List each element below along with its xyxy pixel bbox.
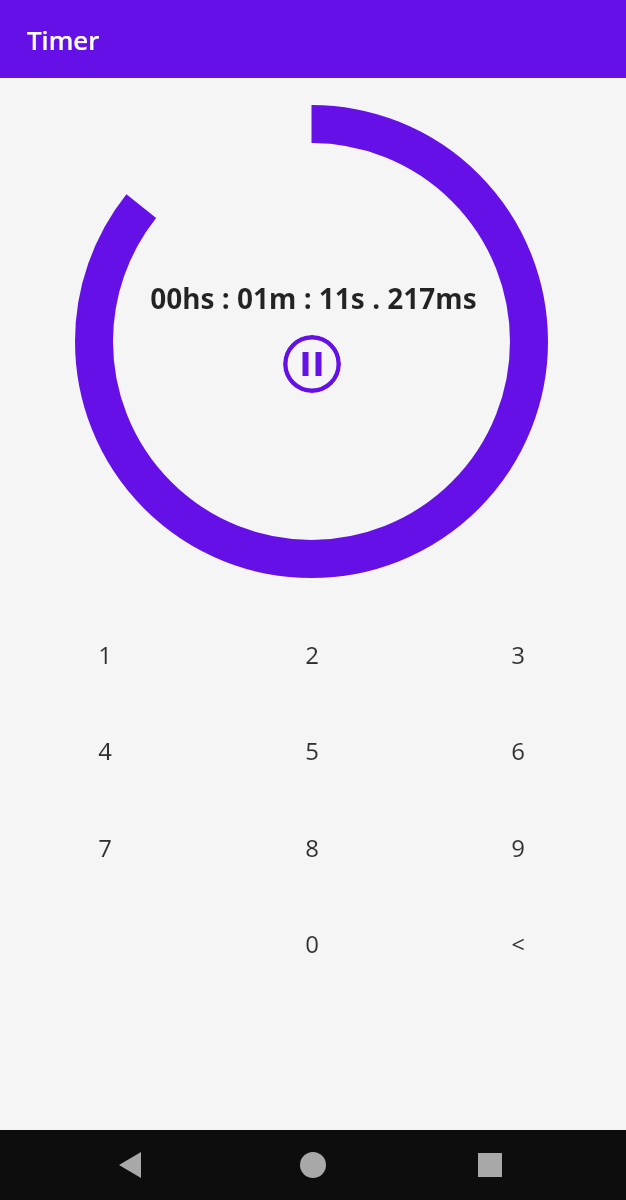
staticText: 5 (305, 734, 319, 767)
staticText: Timer (27, 22, 100, 57)
button[interactable]: Delete (423, 895, 613, 991)
staticText: 3 (511, 638, 525, 671)
button[interactable]: 0 (217, 895, 407, 991)
staticText: 0 (305, 927, 319, 960)
button[interactable]: 7 (10, 799, 200, 895)
button[interactable]: Back (95, 1130, 165, 1200)
button[interactable]: Home (278, 1130, 348, 1200)
button[interactable]: 8 (217, 799, 407, 895)
staticText: 9 (511, 831, 525, 864)
button[interactable]: Recent apps (455, 1130, 525, 1200)
staticText: 6 (511, 734, 525, 767)
staticText: 8 (305, 831, 319, 864)
staticText: 2 (305, 638, 319, 671)
button[interactable]: 4 (10, 702, 200, 798)
staticText: 4 (98, 734, 112, 767)
button[interactable]: 2 (217, 606, 407, 702)
button[interactable]: 6 (423, 702, 613, 798)
button[interactable]: 9 (423, 799, 613, 895)
staticText: 7 (98, 831, 112, 864)
button[interactable]: 5 (217, 702, 407, 798)
staticText: < (511, 927, 525, 960)
staticText: 00hs : 01m : 11s . 217ms (150, 279, 477, 317)
button[interactable]: Pause timer (283, 335, 341, 393)
staticText: 1 (98, 638, 112, 671)
button[interactable]: 1 (10, 606, 200, 702)
button[interactable]: 3 (423, 606, 613, 702)
